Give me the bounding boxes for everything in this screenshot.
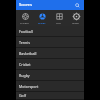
staticText: Scores xyxy=(19,2,33,8)
button[interactable]: Motorsport xyxy=(16,81,84,92)
staticText: Golf xyxy=(19,93,26,98)
staticText: Motorsport xyxy=(19,84,39,89)
staticText: Basketball xyxy=(19,51,37,56)
button[interactable]: Scores xyxy=(19,2,73,8)
staticText: LIVE xyxy=(56,21,61,24)
staticText: Football xyxy=(19,29,33,34)
staticText: Tennis xyxy=(19,40,30,45)
button[interactable]: Football xyxy=(16,26,84,37)
button[interactable]: MORE xyxy=(67,10,84,26)
button[interactable]: Basketball xyxy=(16,48,84,59)
staticText: Rugby xyxy=(19,73,30,78)
button[interactable]: Search xyxy=(73,1,81,9)
button[interactable]: SCORES xyxy=(16,10,33,26)
staticText: Cricket xyxy=(19,62,31,67)
button[interactable]: Golf xyxy=(16,92,84,100)
button[interactable]: SPORT xyxy=(33,10,50,26)
staticText: SCORES xyxy=(20,21,29,24)
button[interactable]: Rugby xyxy=(16,70,84,81)
button[interactable]: Tennis xyxy=(16,37,84,48)
staticText: MORE xyxy=(72,21,79,24)
button[interactable]: Cricket xyxy=(16,59,84,70)
staticText: SPORT xyxy=(38,21,46,24)
button[interactable]: LIVE xyxy=(50,10,67,26)
